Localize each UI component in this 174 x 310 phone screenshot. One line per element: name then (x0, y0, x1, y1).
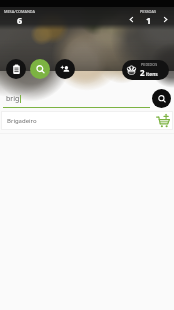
staticText: PEDIDOS (141, 62, 158, 67)
button[interactable]: PEDIDOS (122, 60, 169, 80)
button[interactable]: MESA/COMANDA (2, 9, 38, 26)
staticText: Brigadeiro (7, 117, 37, 125)
button[interactable]: Comanda (6, 59, 26, 79)
staticText: MESA/COMANDA (4, 9, 36, 14)
staticText: 2 (140, 67, 145, 78)
staticText: 6 (17, 14, 23, 26)
staticText: brig (6, 94, 20, 104)
button[interactable]: Adicionar ao carrinho (155, 113, 171, 129)
staticText: PESSOAS (140, 9, 157, 14)
button[interactable]: Pessoas (55, 59, 75, 79)
button[interactable]: Buscar (152, 89, 171, 108)
button[interactable]: Menos pessoas (125, 13, 138, 26)
button[interactable]: Brigadeiro (1, 111, 173, 130)
button[interactable]: Buscar produtos (30, 59, 50, 79)
button[interactable]: Mais pessoas (159, 13, 172, 26)
staticText: itens (146, 71, 158, 78)
staticText: 1 (146, 14, 152, 26)
